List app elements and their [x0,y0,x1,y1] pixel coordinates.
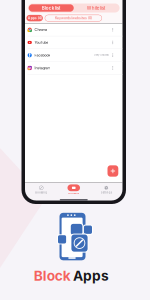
staticText: Facebook [34,53,50,57]
staticText: Apps [73,267,109,284]
button[interactable]: Instagram [25,62,122,75]
button[interactable]: Keywords/websites (0) [45,15,102,21]
staticText: YouTube [34,40,48,45]
button[interactable]: Apps (4) [26,15,43,21]
button[interactable]: Blocking [25,186,57,194]
button[interactable]: YouTube [25,36,122,49]
button[interactable]: Settings [90,186,122,194]
staticText: Chrome [34,27,47,32]
staticText: Whitelist [87,5,106,11]
staticText: Keywords/websites (0) [55,16,92,20]
staticText: Block [34,267,71,284]
staticText: Instagram [34,66,50,70]
button[interactable]: Blocklist [29,4,74,12]
staticText: Blocklist [68,192,79,195]
button[interactable]: f [25,49,122,62]
staticText: Settings [101,191,112,194]
staticText: Apps (4) [28,16,42,20]
button[interactable]: Chrome [25,23,122,36]
staticText: f [29,52,31,58]
staticText: Blocklist [42,5,61,11]
staticText: Blocking [35,191,47,194]
button[interactable]: Whitelist [74,4,119,12]
staticText: Very limited [94,54,109,57]
button[interactable]: Add app [107,165,118,177]
button[interactable]: Blocklist [57,184,90,195]
